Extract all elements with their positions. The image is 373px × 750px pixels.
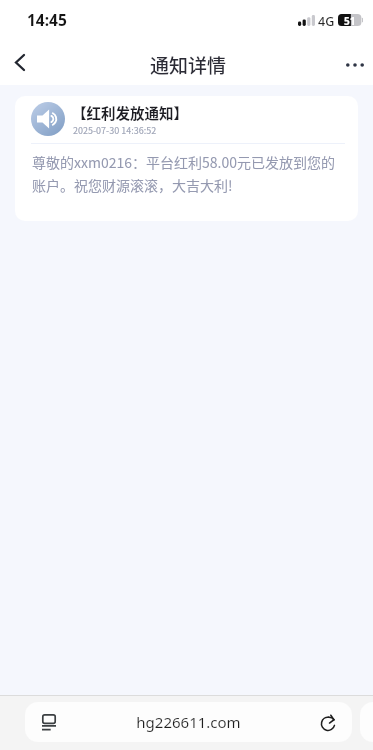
staticText: 尊敬的xxm0216：平台红利58.00元已发放到您的账户。祝您财源滚滚，大吉大…	[32, 152, 346, 195]
staticText: 通知详情	[150, 51, 227, 79]
staticText: hg226611.com	[136, 712, 241, 732]
staticText: 51	[344, 14, 356, 26]
button[interactable]: Reload	[311, 702, 345, 742]
staticText: 2025-07-30 14:36:52	[73, 124, 157, 137]
staticText: 4G	[318, 13, 335, 30]
button[interactable]: 【红利发放通知】	[15, 96, 358, 221]
staticText: 14:45	[27, 9, 67, 30]
staticText: 【红利发放通知】	[72, 102, 188, 123]
button[interactable]: Back	[0, 42, 40, 82]
button[interactable]: More options	[335, 45, 373, 85]
button[interactable]: Reader mode	[25, 702, 352, 742]
button[interactable]: Reader mode	[32, 702, 66, 742]
